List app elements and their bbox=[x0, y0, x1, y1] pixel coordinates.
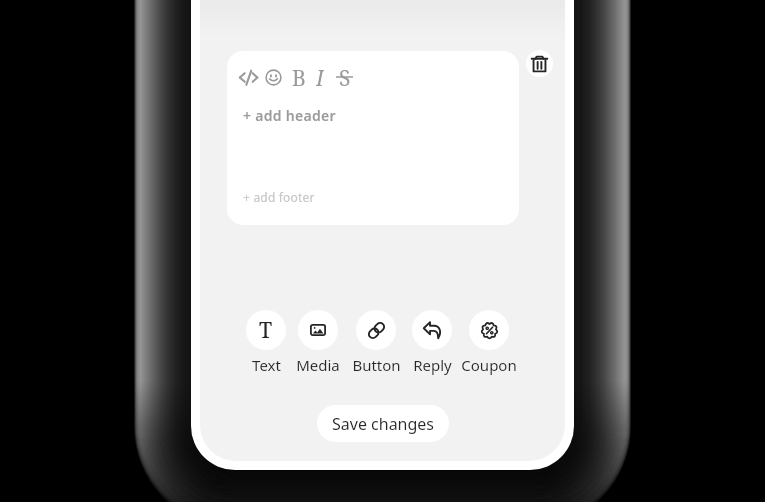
staticText: Reply bbox=[413, 355, 452, 375]
button[interactable]: Emoji bbox=[260, 64, 286, 90]
staticText: Coupon bbox=[461, 355, 517, 375]
button[interactable]: Coupon bbox=[459, 310, 519, 375]
button[interactable]: Button bbox=[346, 310, 406, 375]
button[interactable]: Strikethrough bbox=[331, 64, 357, 90]
button[interactable]: Reply bbox=[402, 310, 462, 375]
staticText: Button bbox=[352, 355, 401, 375]
staticText: Text bbox=[252, 355, 281, 375]
staticText: T bbox=[259, 316, 273, 345]
staticText: B bbox=[292, 64, 306, 90]
button[interactable]: + add footer bbox=[243, 189, 315, 205]
button[interactable]: Save changes bbox=[317, 405, 449, 442]
button[interactable]: Italic bbox=[307, 64, 333, 90]
staticText: I bbox=[316, 64, 324, 90]
staticText: Save changes bbox=[332, 413, 435, 435]
button[interactable]: T bbox=[236, 310, 296, 375]
staticText: S bbox=[339, 64, 351, 90]
button[interactable]: Media bbox=[288, 310, 348, 375]
button[interactable]: Bold bbox=[286, 64, 312, 90]
button[interactable]: Code bbox=[227, 51, 519, 225]
staticText: Media bbox=[296, 355, 340, 375]
button[interactable]: Code bbox=[235, 64, 261, 90]
button[interactable]: + add header bbox=[243, 106, 336, 125]
button[interactable]: Delete bbox=[526, 50, 553, 77]
